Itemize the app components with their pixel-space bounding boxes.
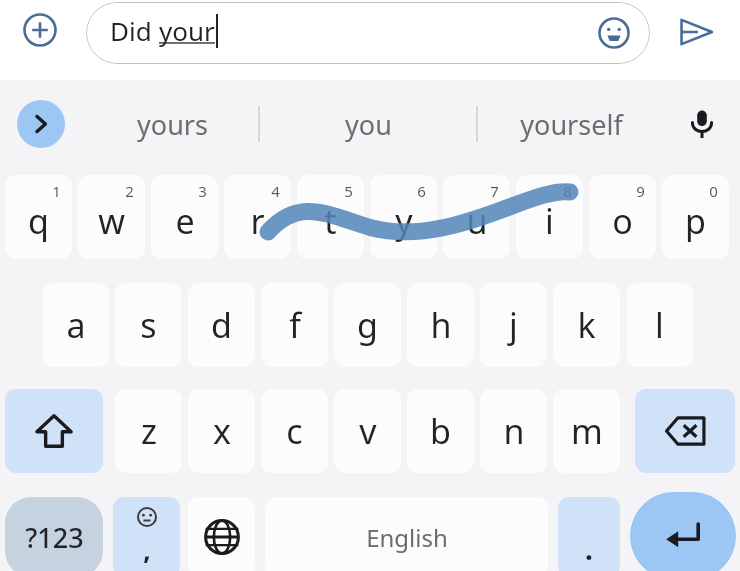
staticText: y (395, 198, 413, 244)
staticText: m (571, 408, 603, 454)
button[interactable]: m (553, 389, 620, 473)
button[interactable]: k (553, 283, 620, 367)
button[interactable]: l (626, 283, 693, 367)
staticText: i (545, 198, 554, 244)
button[interactable]: Send (666, 2, 726, 62)
button[interactable]: Add attachment (12, 2, 68, 58)
staticText: yourself (520, 106, 623, 143)
button[interactable]: x (188, 389, 255, 473)
staticText: x (213, 408, 231, 454)
button[interactable]: h (407, 283, 474, 367)
button[interactable]: Enter (630, 492, 736, 571)
button[interactable]: yours (86, 80, 258, 168)
button[interactable]: Emoji (590, 9, 638, 57)
button[interactable]: Backspace (635, 389, 735, 473)
staticText: q (28, 198, 49, 244)
staticText: 0 (709, 181, 718, 201)
staticText: 8 (563, 181, 572, 201)
staticText: g (357, 302, 378, 348)
staticText: v (359, 408, 377, 454)
staticText: 3 (198, 181, 207, 201)
staticText: t (324, 198, 337, 244)
staticText: j (509, 302, 518, 348)
staticText: 2 (125, 181, 134, 201)
staticText: o (612, 198, 633, 244)
button[interactable]: Shift (5, 389, 103, 473)
button[interactable]: b (407, 389, 474, 473)
button[interactable]: o (589, 175, 656, 259)
button[interactable]: d (188, 283, 255, 367)
button[interactable]: Voice input (676, 98, 728, 150)
button[interactable]: c (261, 389, 328, 473)
button[interactable]: f (261, 283, 328, 367)
staticText: l (655, 302, 664, 348)
button[interactable]: z (115, 389, 182, 473)
staticText: a (66, 302, 86, 348)
staticText: u (466, 198, 488, 244)
staticText: r (250, 198, 265, 244)
staticText: 9 (636, 181, 645, 201)
button[interactable]: j (480, 283, 547, 367)
staticText: 6 (417, 181, 426, 201)
staticText: English (366, 521, 448, 554)
staticText: k (577, 302, 596, 348)
button[interactable]: i (516, 175, 583, 259)
staticText: 5 (344, 181, 353, 201)
staticText: Did (110, 13, 159, 48)
button[interactable]: y (370, 175, 437, 259)
staticText: z (141, 408, 157, 454)
button[interactable]: v (334, 389, 401, 473)
button[interactable]: Change language (188, 497, 255, 571)
button[interactable]: q (5, 175, 72, 259)
staticText: n (503, 408, 525, 454)
button[interactable]: s (115, 283, 182, 367)
button[interactable]: t (297, 175, 364, 259)
staticText: 1 (52, 181, 61, 201)
button[interactable]: a (42, 283, 109, 367)
staticText: 7 (490, 181, 499, 201)
staticText: yours (137, 106, 208, 143)
staticText: , (143, 532, 151, 567)
button[interactable]: p (662, 175, 729, 259)
button[interactable]: ?123 (5, 497, 103, 571)
staticText: p (685, 198, 706, 244)
staticText: s (140, 302, 157, 348)
button[interactable]: w (78, 175, 145, 259)
button[interactable]: . (558, 497, 620, 571)
button[interactable]: u (443, 175, 510, 259)
button[interactable]: e (151, 175, 218, 259)
button[interactable]: r (224, 175, 291, 259)
staticText: h (430, 302, 452, 348)
button[interactable]: More suggestions (17, 100, 65, 148)
staticText: w (98, 198, 125, 244)
button[interactable]: yourself (480, 80, 662, 168)
staticText: c (286, 408, 303, 454)
button[interactable]: you (262, 80, 474, 168)
staticText: d (211, 302, 232, 348)
button[interactable]: Emoji and comma (113, 497, 180, 571)
staticText: 4 (271, 181, 280, 201)
button[interactable]: g (334, 283, 401, 367)
staticText: . (585, 530, 593, 568)
staticText: e (175, 198, 195, 244)
staticText: you (345, 106, 392, 143)
staticText: f (289, 302, 301, 348)
staticText: b (430, 408, 451, 454)
button[interactable]: n (480, 389, 547, 473)
button[interactable]: English (265, 497, 548, 571)
button[interactable]: Did (86, 2, 650, 64)
staticText: your (159, 13, 215, 48)
staticText: ?123 (25, 519, 84, 556)
